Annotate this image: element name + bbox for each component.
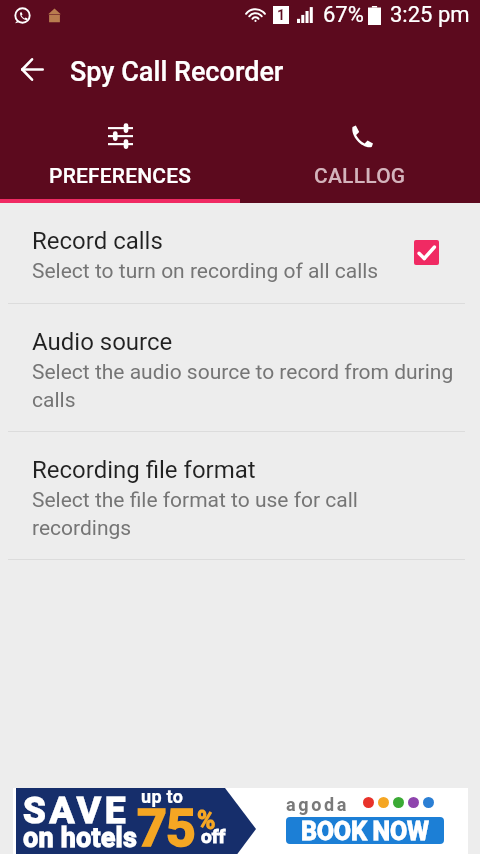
staticText: Record calls	[32, 227, 163, 255]
button[interactable]: Audio source	[0, 304, 480, 431]
button[interactable]: Record calls	[0, 203, 480, 303]
staticText: agoda	[286, 794, 349, 815]
staticText: 75	[137, 798, 195, 854]
staticText: %	[197, 806, 216, 835]
button[interactable]: BOOK NOW	[286, 817, 444, 844]
staticText: SAVE	[23, 789, 130, 832]
staticText: Select the audio source to record from d…	[32, 360, 454, 412]
staticText: Recording file format	[32, 456, 256, 484]
staticText: Audio source	[32, 328, 173, 356]
staticText: up to	[141, 786, 184, 807]
staticText: 3:25 pm	[390, 2, 470, 28]
staticText: Select the file format to use for call r…	[32, 488, 358, 540]
button[interactable]: CALLLOG	[240, 104, 480, 199]
staticText: PREFERENCES	[49, 164, 192, 189]
staticText: CALLLOG	[314, 164, 406, 189]
staticText: Spy Call Recorder	[70, 56, 284, 88]
staticText: BOOK NOW	[301, 817, 429, 844]
button[interactable]: Record calls checkbox	[414, 240, 439, 265]
staticText: off	[201, 825, 226, 847]
staticText: Select to turn on recording of all calls	[32, 259, 379, 284]
button[interactable]: SAVE	[0, 788, 480, 854]
staticText: 1	[277, 7, 286, 23]
button[interactable]: Recording file format	[0, 432, 480, 559]
button[interactable]: Navigate up	[0, 30, 64, 104]
staticText: 67%	[323, 2, 364, 28]
staticText: on hotels	[23, 822, 138, 854]
button[interactable]: PREFERENCES	[0, 104, 240, 199]
